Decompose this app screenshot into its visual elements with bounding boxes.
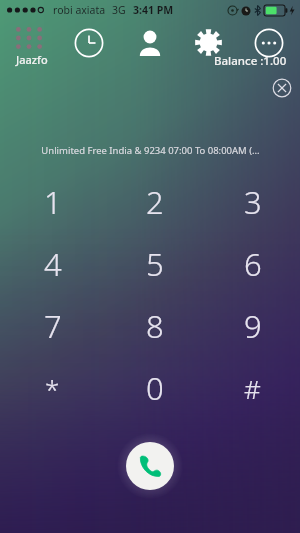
- button[interactable]: 1: [0, 171, 105, 233]
- button[interactable]: 8: [105, 295, 205, 357]
- staticText: 0: [146, 367, 164, 409]
- staticText: 1: [44, 181, 62, 223]
- staticText: Unlimited Free India & 9234 07:00 To 08:…: [41, 144, 260, 157]
- staticText: 8: [146, 305, 164, 347]
- button[interactable]: *: [0, 357, 105, 419]
- staticText: Balance :1.00: [214, 53, 287, 69]
- staticText: 4: [44, 243, 62, 285]
- button[interactable]: Call: [126, 442, 174, 490]
- button[interactable]: Clear: [271, 77, 293, 99]
- staticText: 7: [44, 305, 62, 347]
- staticText: 5: [146, 243, 164, 285]
- button[interactable]: 5: [105, 233, 205, 295]
- button[interactable]: 4: [0, 233, 105, 295]
- staticText: 3:41 PM: [133, 3, 174, 17]
- button[interactable]: 9: [205, 295, 300, 357]
- button[interactable]: Call history: [74, 28, 104, 58]
- staticText: *: [45, 371, 60, 406]
- staticText: 3G: [112, 3, 126, 17]
- staticText: 6: [244, 243, 262, 285]
- button[interactable]: 2: [105, 171, 205, 233]
- staticText: #: [244, 371, 261, 406]
- staticText: 2: [146, 181, 164, 223]
- button[interactable]: More options: [254, 28, 284, 58]
- button[interactable]: 7: [0, 295, 105, 357]
- button[interactable]: 0: [105, 357, 205, 419]
- button[interactable]: Contacts: [135, 28, 165, 58]
- button[interactable]: 3: [205, 171, 300, 233]
- button[interactable]: Settings: [194, 28, 223, 57]
- staticText: 3: [244, 181, 262, 223]
- staticText: robi axiata: [53, 3, 106, 17]
- staticText: 9: [244, 305, 262, 347]
- button[interactable]: #: [205, 357, 300, 419]
- button[interactable]: 6: [205, 233, 300, 295]
- staticText: Jaazfone: [16, 52, 50, 67]
- button[interactable]: Dialpad: [16, 25, 50, 69]
